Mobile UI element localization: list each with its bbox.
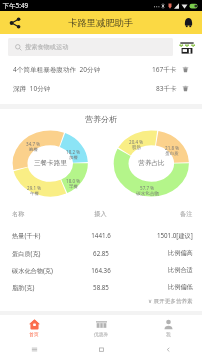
- staticText: 18.2 %: [66, 149, 80, 155]
- staticText: 21.8 %: [165, 145, 179, 151]
- staticText: 34.7 %: [26, 141, 40, 147]
- staticText: 摄入: [94, 210, 107, 218]
- staticText: 29.1 %: [27, 185, 41, 191]
- staticText: 下午5:49: [3, 1, 29, 10]
- staticText: 营养分析: [85, 114, 117, 124]
- staticText: 比例偏高: [168, 249, 193, 257]
- staticText: 1441.6: [91, 231, 111, 239]
- staticText: 蛋白质: [165, 151, 179, 157]
- button[interactable]: 我: [135, 315, 202, 340]
- staticText: 83千卡: [156, 84, 177, 93]
- staticText: 搜索食物或运动: [25, 43, 69, 51]
- button[interactable]: 优惠券: [68, 315, 135, 340]
- staticText: 碳水化合物: [136, 191, 159, 197]
- other: Delete: [182, 85, 189, 92]
- button[interactable]: ∨ 展开更多营养素: [0, 294, 202, 307]
- staticText: 蛋白质(克): [12, 249, 41, 257]
- staticText: 备注: [180, 210, 193, 218]
- staticText: 首页: [29, 331, 39, 337]
- staticText: 三餐卡路里: [34, 159, 67, 167]
- staticText: 比例偏低: [168, 283, 193, 291]
- button[interactable]: Notifications: [183, 17, 194, 28]
- staticText: 164.36: [91, 266, 111, 274]
- staticText: 脂肪: [132, 145, 141, 151]
- staticText: 20.4 %: [129, 139, 143, 145]
- staticText: 优惠券: [94, 331, 109, 337]
- staticText: 名称: [12, 210, 25, 218]
- button[interactable]: 深蹲 10分钟: [0, 79, 202, 97]
- staticText: 碳水化合物(克): [12, 266, 53, 274]
- staticText: 比例合适: [168, 266, 193, 274]
- button[interactable]: 搜索食物或运动: [8, 38, 173, 56]
- staticText: 深蹲 10分钟: [13, 84, 51, 93]
- staticText: 4个简单粗暴卷腹动作 20分钟: [13, 65, 101, 74]
- button[interactable]: Share: [9, 17, 21, 29]
- other: Delete: [182, 66, 189, 73]
- staticText: 167千卡: [152, 65, 177, 74]
- button[interactable]: 首页: [0, 315, 68, 340]
- staticText: 热量(千卡): [12, 231, 41, 239]
- staticText: 卡路里减肥助手: [68, 17, 134, 29]
- staticText: 我: [166, 331, 171, 337]
- staticText: 脂肪(克): [12, 283, 35, 291]
- staticText: 18.0 %: [66, 178, 80, 184]
- staticText: 58.85: [93, 283, 109, 291]
- staticText: 午餐: [30, 191, 39, 197]
- button[interactable]: 4个简单粗暴卷腹动作 20分钟: [0, 60, 202, 78]
- staticText: 加餐: [69, 155, 78, 161]
- staticText: 62.85: [93, 249, 109, 257]
- staticText: 1501.0[建议]: [157, 231, 193, 239]
- button[interactable]: Shop: [178, 40, 196, 55]
- staticText: 营养占比: [138, 159, 165, 167]
- staticText: 57.7 %: [140, 185, 154, 191]
- staticText: 晚餐: [29, 147, 38, 153]
- staticText: 早餐: [69, 184, 78, 190]
- staticText: ∨ 展开更多营养素: [148, 297, 193, 305]
